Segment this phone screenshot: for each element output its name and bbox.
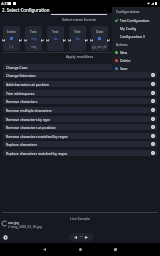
staticText: Apply modifiers (66, 54, 94, 59)
staticText: Replace characters (6, 142, 37, 147)
staticText: Select name format (62, 17, 96, 22)
staticText: Text (52, 29, 59, 34)
button[interactable]: Remove characters by type (3, 116, 157, 122)
button[interactable]: Remove characters matched by regex (3, 133, 157, 139)
staticText: Live Sample (70, 216, 91, 221)
button[interactable]: • • (69, 233, 93, 241)
button[interactable]: Text (69, 26, 86, 51)
staticText: Save (120, 66, 128, 71)
button[interactable]: Replace characters matched by regex (3, 150, 157, 156)
button[interactable]: Previous (23, 38, 27, 42)
button[interactable]: Trim whitespaces (3, 90, 157, 96)
staticText: L:\img_2020_02_05.jpg (8, 225, 42, 229)
staticText: Actions (116, 42, 128, 46)
staticText: • • (80, 235, 83, 239)
staticText: Text (74, 29, 81, 34)
button[interactable]: Select name format (51, 14, 107, 22)
button[interactable]: Add characters at position (3, 81, 157, 87)
button[interactable]: New (112, 48, 160, 56)
staticText: Text (30, 29, 37, 34)
button[interactable]: Next (18, 38, 22, 42)
staticText: Configuration 3 (120, 34, 145, 39)
staticText: Aa (76, 37, 80, 41)
staticText: Remove characters at position (6, 125, 56, 130)
staticText: New (120, 50, 128, 55)
button[interactable]: Remove characters at position (3, 124, 157, 130)
staticText: Test Configuration (120, 18, 150, 23)
button[interactable]: Next (62, 38, 66, 42)
button[interactable]: Next (84, 38, 88, 42)
button[interactable]: Delete (112, 56, 160, 64)
button[interactable]: Save (112, 64, 160, 72)
staticText: Configurations (116, 9, 140, 13)
staticText: xxx.jpg (8, 221, 19, 225)
button[interactable]: Recents (111, 245, 120, 254)
button[interactable]: Remove characters (3, 98, 157, 104)
button[interactable]: Change Case (3, 64, 157, 70)
button[interactable]: Next (106, 38, 110, 42)
staticText: Replace characters matched by regex (6, 151, 68, 156)
button[interactable]: My Config (112, 24, 160, 32)
button[interactable]: Replace characters (3, 141, 157, 147)
button[interactable]: Next (40, 38, 44, 42)
staticText: 1,2 (9, 45, 14, 49)
staticText: Remove characters by type (6, 117, 51, 122)
staticText: Change Case (6, 65, 28, 70)
staticText: 4:31 (1, 1, 9, 6)
staticText: Remove characters matched by regex (6, 134, 68, 139)
staticText: yyy_mm_dd (92, 45, 107, 49)
staticText: 2. Select Configuration (2, 7, 50, 13)
button[interactable]: Change Extension (3, 72, 157, 78)
staticText: Aa (54, 37, 58, 41)
button[interactable]: Previous (67, 38, 71, 42)
button[interactable]: Settings (3, 235, 8, 240)
staticText: img (31, 37, 37, 41)
button[interactable]: Test Configuration (112, 16, 160, 24)
staticText: Remove characters (6, 99, 38, 104)
staticText: Change Extension (6, 73, 36, 78)
button[interactable]: Configuration 3 (112, 32, 160, 40)
button[interactable]: Index (3, 26, 20, 51)
staticText: My Config (120, 26, 137, 31)
button[interactable]: Remove multiple characters (3, 107, 157, 113)
button[interactable]: Date (91, 26, 108, 51)
staticText: Add characters at position (6, 82, 49, 87)
button[interactable]: Home (76, 245, 85, 254)
staticText: img (31, 45, 37, 49)
button[interactable]: Previous (89, 38, 93, 42)
staticText: Index (7, 29, 16, 34)
staticText: Trim whitespaces (6, 91, 35, 96)
staticText: Delete (120, 58, 131, 63)
staticText: Date (96, 29, 104, 34)
staticText: Remove multiple characters (6, 108, 52, 113)
button[interactable]: Text (25, 26, 42, 51)
button[interactable]: Previous (45, 38, 49, 42)
button[interactable]: Previous (1, 38, 5, 42)
button[interactable]: Back (40, 245, 49, 254)
button[interactable]: Text (47, 26, 64, 51)
